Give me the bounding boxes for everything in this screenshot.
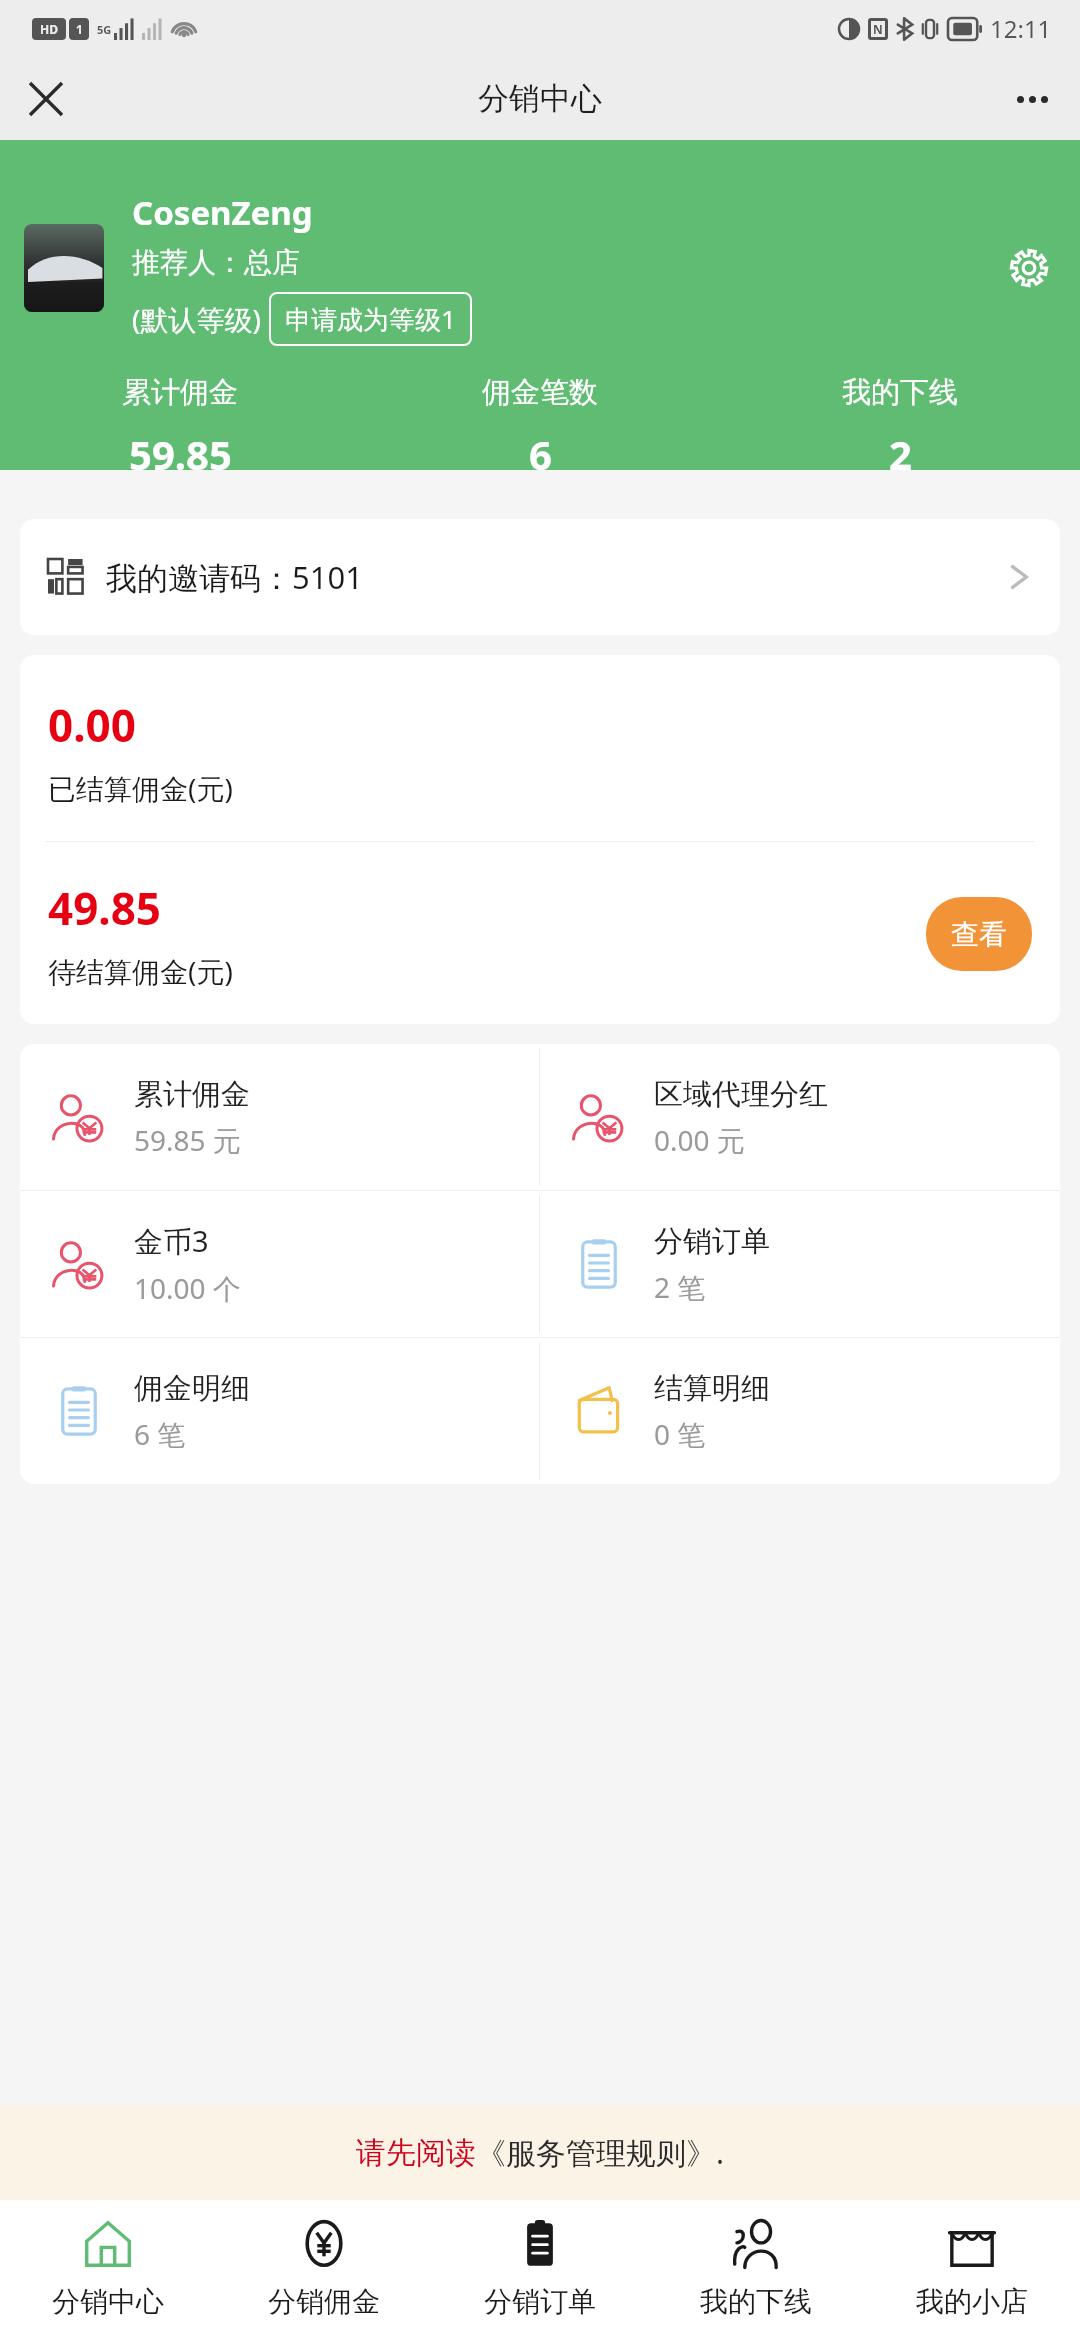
staticText: 我的下线 [700,2284,812,2319]
button[interactable]: 查看 [926,897,1032,971]
staticText: 区域代理分红 [654,1076,828,1113]
staticText: 累计佣金 [134,1076,250,1113]
staticText: 金币3 [134,1221,209,1261]
staticText: 6 笔 [134,1415,186,1453]
button[interactable]: 分销中心 [0,2216,216,2340]
staticText: 分销订单 [484,2284,596,2319]
button[interactable]: 分销订单 [540,1191,1060,1337]
button[interactable]: 结算明细 [540,1338,1060,1484]
staticText: 分销订单 [654,1223,770,1260]
staticText: 佣金笔数 [482,374,598,411]
staticText: 59.85 元 [134,1121,241,1159]
staticText: 10.00 个 [134,1269,241,1307]
button[interactable]: 我的小店 [864,2216,1080,2340]
staticText: 我的邀请码：5101 [106,556,363,598]
staticText: HD [40,21,58,37]
staticText: 2 [889,427,912,481]
staticText: 59.85 [129,427,232,481]
button[interactable]: 分销佣金 [216,2216,432,2340]
button[interactable]: 分销订单 [432,2216,648,2340]
staticText: 分销中心 [478,79,602,118]
staticText: N [873,21,883,37]
button[interactable]: More options [1002,69,1062,129]
button[interactable]: 我的邀请码：5101 [20,519,1060,635]
staticText: 12:11 [990,12,1052,45]
staticText: 1 [76,21,83,37]
staticText: 分销中心 [52,2284,164,2319]
staticText: 49.85 [48,878,162,938]
staticText: 0 笔 [654,1415,706,1453]
staticText: 我的小店 [916,2284,1028,2319]
button[interactable]: 我的下线 [720,374,1080,481]
button[interactable]: 区域代理分红 [540,1044,1060,1190]
staticText: 我的下线 [842,374,958,411]
staticText: 申请成为等级1 [285,301,456,337]
staticText: (默认等级) [132,300,261,338]
staticText: CosenZeng [132,190,313,235]
staticText: 《服务管理规则》. [476,2132,725,2173]
button[interactable]: Settings [1002,241,1056,295]
staticText: 待结算佣金(元) [48,952,233,990]
staticText: 已结算佣金(元) [48,769,233,807]
button[interactable]: 佣金明细 [20,1338,539,1484]
staticText: 查看 [951,917,1007,952]
staticText: 请先阅读 [356,2134,476,2172]
staticText: 0.00 元 [654,1121,745,1159]
button[interactable]: 我的下线 [648,2216,864,2340]
button[interactable]: 金币3 [20,1191,539,1337]
button[interactable]: 累计佣金 [20,1044,539,1190]
button[interactable]: Close [18,71,74,127]
staticText: 2 笔 [654,1268,706,1306]
staticText: 佣金明细 [134,1370,250,1407]
staticText: 结算明细 [654,1370,770,1407]
button[interactable]: 申请成为等级1 [269,292,472,346]
staticText: 分销佣金 [268,2284,380,2319]
staticText: 推荐人：总店 [132,245,300,280]
button[interactable]: 累计佣金 [0,374,360,481]
button[interactable]: 请先阅读 [0,2105,1080,2200]
button[interactable]: 佣金笔数 [360,374,720,481]
staticText: 5G [97,22,112,37]
staticText: 6 [529,427,552,481]
button[interactable]: 0.00 [20,655,1060,841]
staticText: 0.00 [48,695,136,755]
staticText: 累计佣金 [122,374,238,411]
